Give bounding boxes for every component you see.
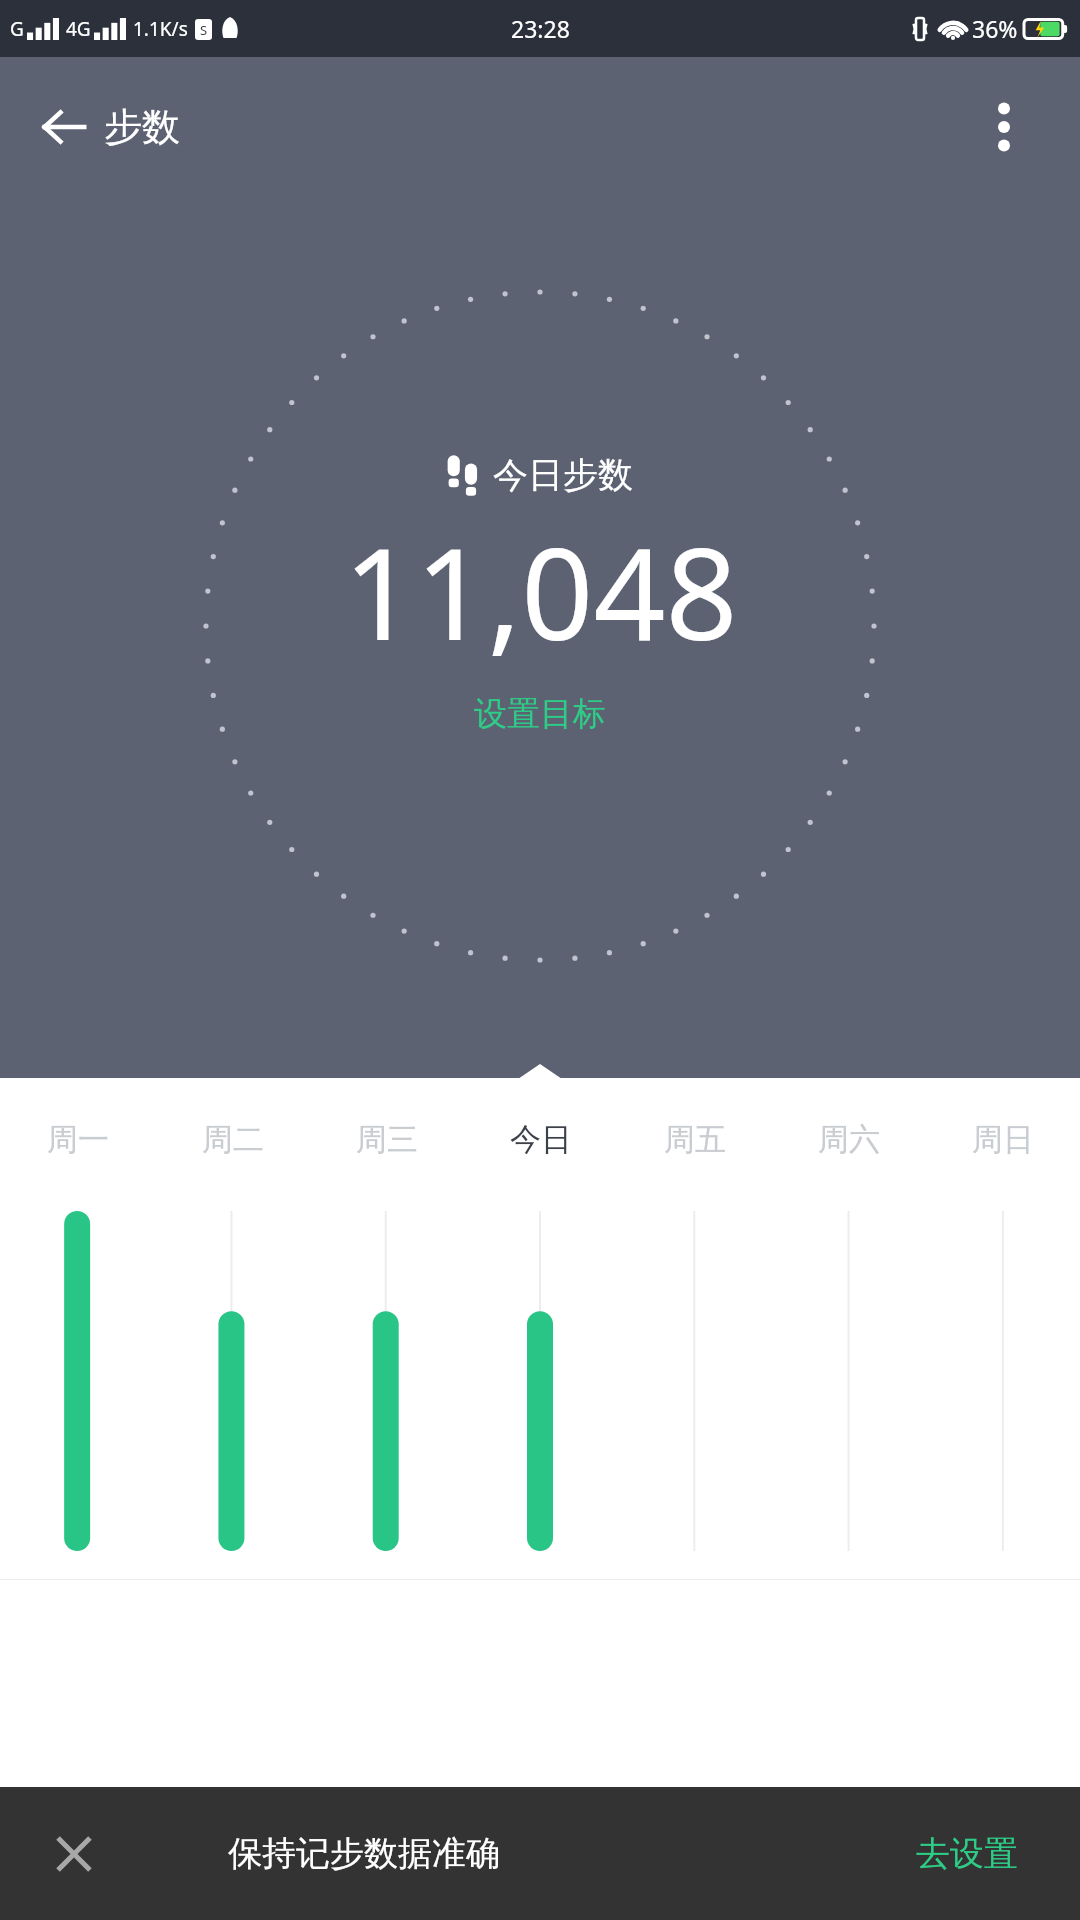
button[interactable]: 周六 (772, 1120, 926, 1159)
button[interactable]: 周二 (155, 1120, 310, 1159)
button[interactable]: 周日 (926, 1120, 1080, 1159)
staticText: 去设置 (916, 1832, 1018, 1875)
staticText: 11,048 (343, 505, 738, 677)
button[interactable]: 周一 (0, 1120, 155, 1159)
button[interactable]: 周三 (310, 1120, 464, 1159)
staticText: 4G (66, 16, 91, 42)
staticText: S (200, 21, 208, 39)
staticText: 保持记步数据准确 (228, 1832, 500, 1875)
button[interactable]: 今日 (464, 1120, 618, 1159)
staticText: 周五 (664, 1120, 726, 1159)
staticText: G (10, 16, 24, 42)
staticText: 步数 (104, 103, 180, 151)
staticText: 周日 (972, 1120, 1034, 1159)
staticText: 周二 (202, 1120, 264, 1159)
staticText: 周六 (818, 1120, 880, 1159)
staticText: 今日步数 (493, 453, 633, 497)
staticText: 周一 (47, 1120, 109, 1159)
staticText: 1.1K/s (133, 16, 188, 42)
staticText: 今日 (510, 1120, 572, 1159)
staticText: 23:28 (511, 13, 570, 44)
staticText: 周三 (356, 1120, 418, 1159)
button[interactable]: Back (28, 91, 100, 163)
staticText: 36% (972, 13, 1018, 44)
button[interactable]: More options (968, 91, 1040, 163)
button[interactable]: 设置目标 (454, 687, 626, 741)
button[interactable]: 周五 (618, 1120, 772, 1159)
button[interactable]: 去设置 (906, 1820, 1028, 1887)
button[interactable]: Close (36, 1816, 112, 1892)
staticText: 设置目标 (474, 693, 606, 735)
